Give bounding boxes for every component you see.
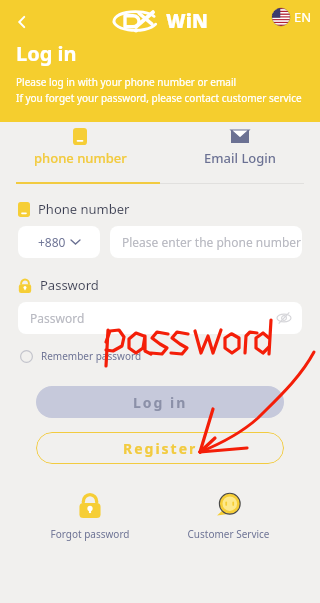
staticText: EN [294,8,312,26]
button[interactable]: Log in [36,386,284,418]
button[interactable]: Register [36,432,284,464]
staticText: Customer Service [187,527,270,541]
staticText: Log in [16,40,77,67]
button[interactable]: Remember password [18,346,144,366]
button[interactable]: Show password [274,308,294,328]
staticText: phone number [34,149,127,167]
staticText: Please log in with your phone number or … [16,75,237,89]
staticText: +880 [38,234,66,250]
button[interactable]: Customer Service [181,486,276,547]
button[interactable]: Back [4,4,40,40]
button[interactable]: EN [268,6,316,28]
button[interactable]: +880 [18,226,100,258]
button[interactable]: Password [18,302,302,334]
staticText: Phone number [38,200,130,218]
staticText: Please enter the phone number [122,234,302,250]
staticText: Forgot password [50,527,130,541]
staticText: Password [30,310,85,326]
staticText: Email Login [204,149,276,167]
button[interactable]: Forgot password [44,486,136,547]
staticText: Password [40,276,99,294]
button[interactable]: phone number [0,122,160,184]
button[interactable]: Please enter the phone number [110,226,302,258]
staticText: Log in [133,393,188,412]
staticText: Remember password [41,349,142,363]
button[interactable]: Email Login [160,122,320,184]
staticText: WiN [166,8,208,34]
staticText: If you forget your password, please cont… [16,91,302,105]
staticText: Register [123,439,198,458]
